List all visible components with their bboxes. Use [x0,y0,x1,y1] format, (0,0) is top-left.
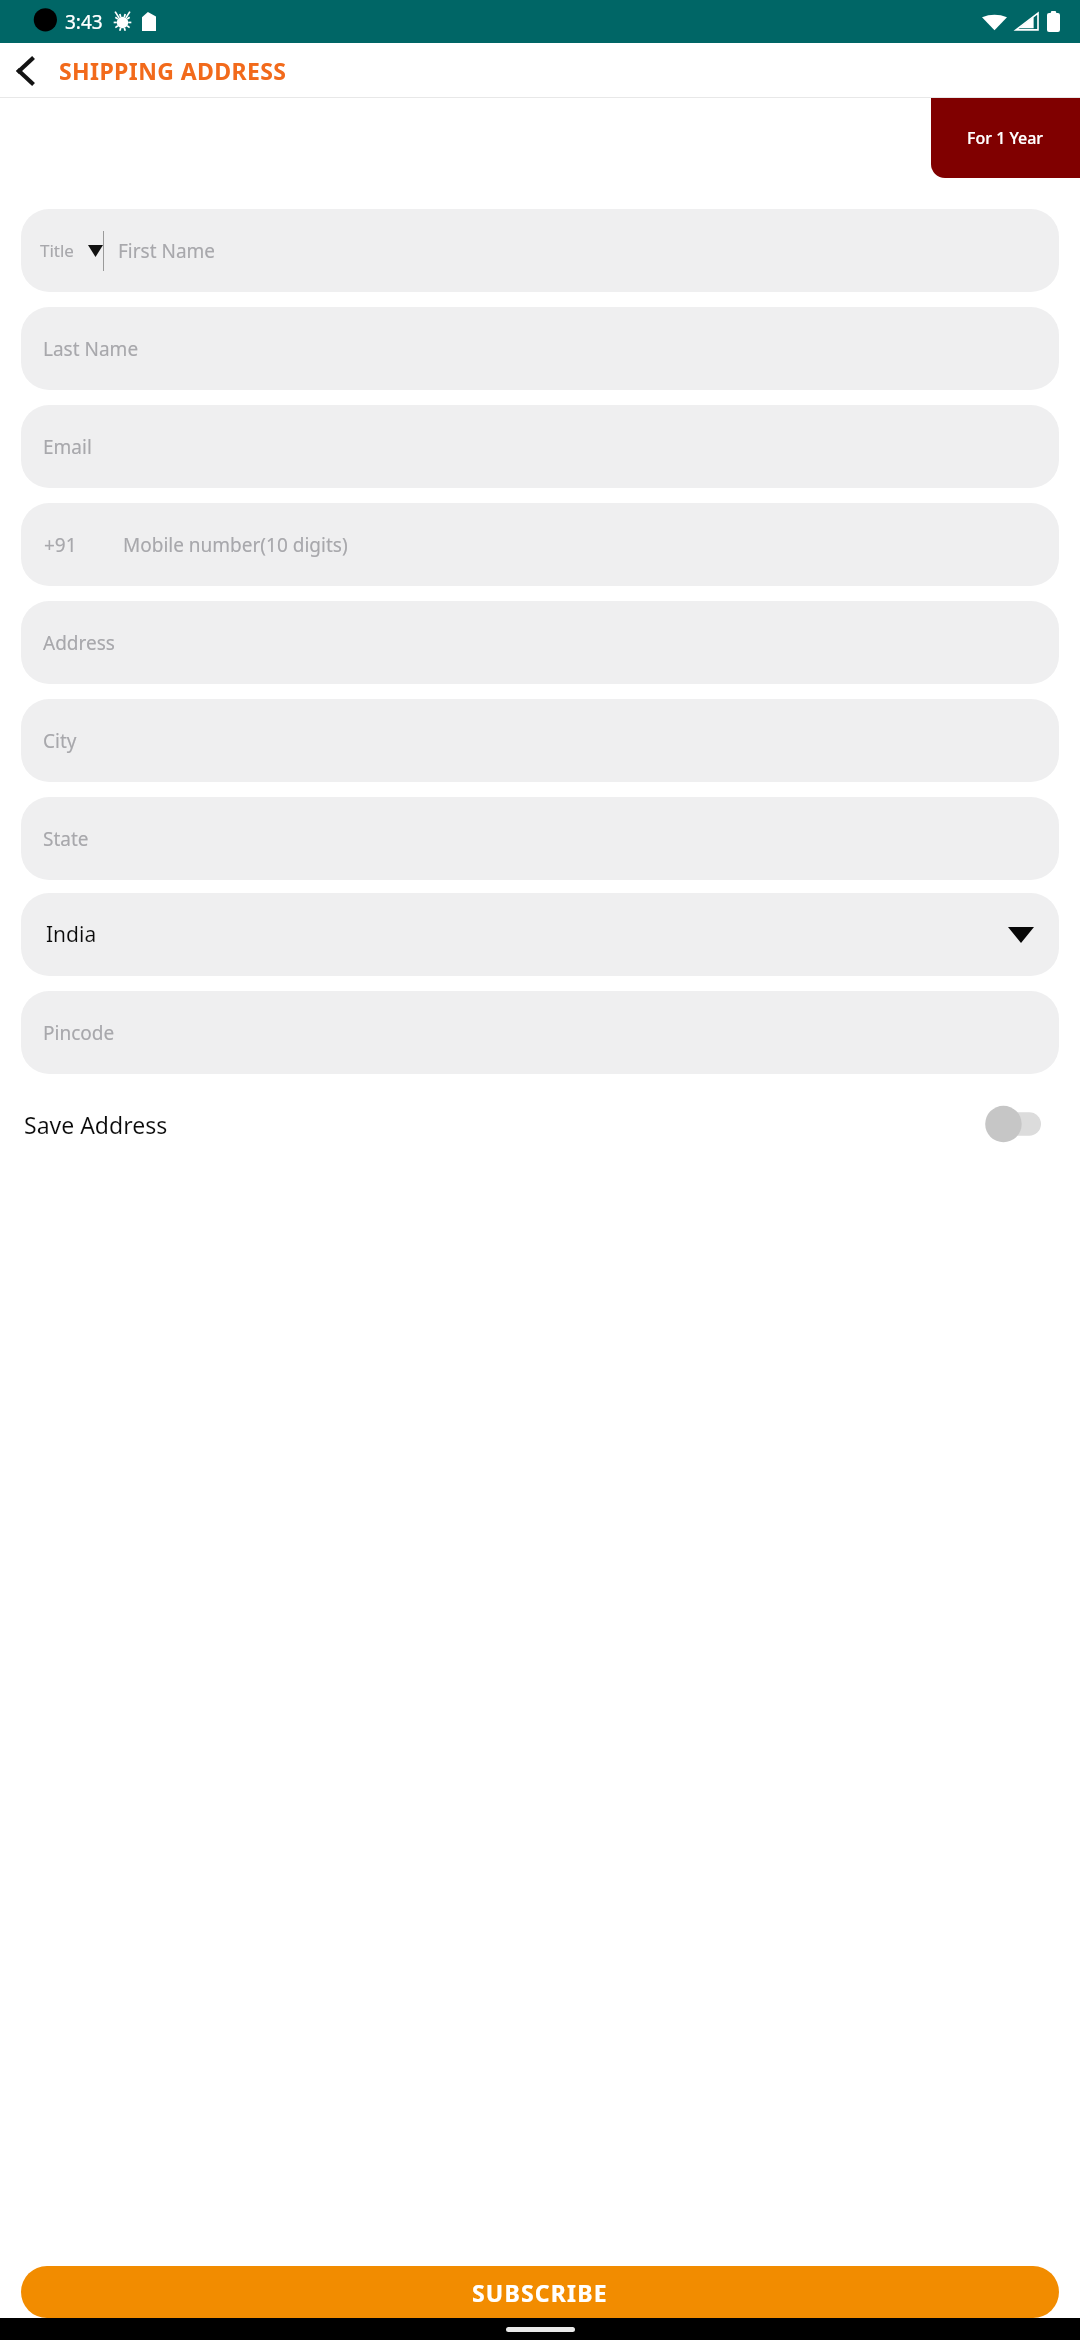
button[interactable]: For 1 Year [931,98,1080,178]
staticText: Last Name [43,336,139,362]
staticText: Title [40,239,74,262]
button[interactable]: Email [21,405,1059,488]
staticText: Email [43,434,92,460]
staticText: 3:43 [65,9,103,35]
button[interactable]: Address [21,601,1059,684]
button[interactable]: Pincode [21,991,1059,1074]
staticText: +91 [44,532,77,558]
button[interactable]: City [21,699,1059,782]
staticText: Save Address [24,1109,168,1140]
button[interactable]: Back [0,46,50,96]
staticText: Pincode [43,1020,115,1046]
button[interactable]: Save Address [0,1094,1080,1154]
staticText: First Name [118,238,216,264]
button[interactable]: +91 [21,503,1059,586]
button[interactable]: India [21,893,1059,976]
button[interactable]: SUBSCRIBE [21,2266,1059,2318]
staticText: For 1 Year [967,127,1044,149]
button[interactable]: Save address toggle [984,1105,1044,1143]
button[interactable]: Title [32,209,103,292]
staticText: SHIPPING ADDRESS [59,55,287,86]
button[interactable]: Last Name [21,307,1059,390]
staticText: City [43,728,77,754]
staticText: Mobile number(10 digits) [123,532,348,558]
staticText: India [46,920,97,949]
staticText: SUBSCRIBE [472,2277,608,2308]
staticText: Address [43,630,115,656]
staticText: State [43,826,89,852]
button[interactable]: State [21,797,1059,880]
button[interactable]: Title [21,209,1059,292]
